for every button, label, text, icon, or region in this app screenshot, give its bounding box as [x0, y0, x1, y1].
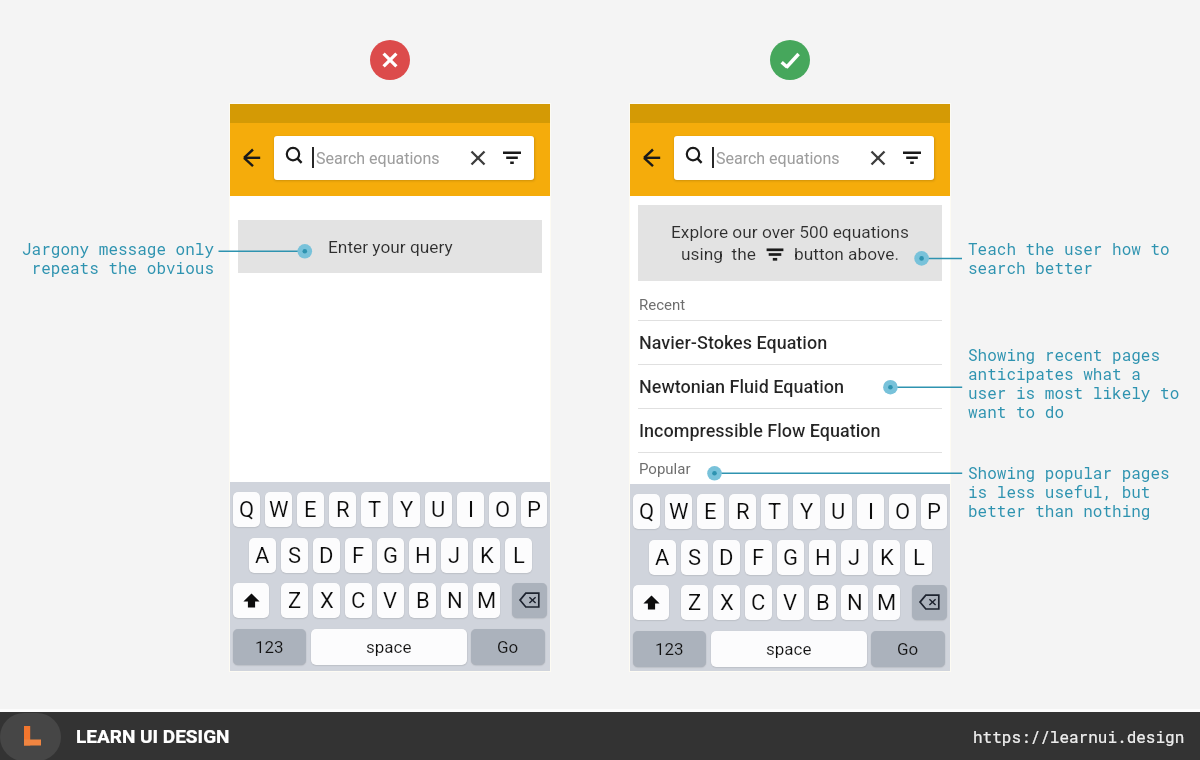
staticText: N — [447, 588, 463, 614]
button[interactable]: O — [489, 492, 516, 527]
button[interactable]: W — [665, 494, 692, 529]
button[interactable]: Shift — [633, 585, 669, 620]
button[interactable]: N — [441, 583, 468, 618]
staticText: S — [688, 545, 702, 571]
button[interactable]: 123 — [633, 631, 706, 667]
button[interactable]: Y — [793, 494, 820, 529]
button[interactable]: E — [297, 492, 324, 527]
button[interactable]: Y — [393, 492, 420, 527]
button[interactable]: A — [649, 540, 676, 575]
button[interactable]: I — [457, 492, 484, 527]
button[interactable]: M — [873, 585, 900, 620]
button[interactable]: S — [681, 540, 708, 575]
staticText: I — [868, 499, 874, 525]
button[interactable]: J — [441, 538, 468, 573]
staticText: Search equations — [716, 149, 840, 168]
staticText: Q — [639, 499, 655, 525]
staticText: Showing popular pages is less useful, bu… — [968, 462, 1200, 522]
button[interactable]: Incompressible Flow Equation — [639, 409, 950, 452]
button[interactable]: 123 — [233, 629, 306, 665]
button[interactable]: Recent — [639, 289, 950, 320]
button[interactable]: Explore our over 500 equations — [638, 205, 942, 281]
button[interactable]: L — [905, 540, 932, 575]
button[interactable]: T — [361, 492, 388, 527]
button[interactable]: J — [841, 540, 868, 575]
button[interactable]: Backspace — [912, 585, 947, 620]
button[interactable]: Search equations — [674, 136, 934, 180]
button[interactable]: N — [841, 585, 868, 620]
button[interactable]: X — [313, 583, 340, 618]
button[interactable]: V — [777, 585, 804, 620]
button[interactable]: Shift — [233, 583, 269, 618]
button[interactable]: H — [809, 540, 836, 575]
button[interactable]: Backspace — [512, 583, 547, 618]
staticText: X — [320, 588, 334, 614]
button[interactable]: M — [473, 583, 500, 618]
button[interactable]: D — [313, 538, 340, 573]
staticText: H — [415, 543, 431, 569]
button[interactable]: C — [345, 583, 372, 618]
button[interactable]: B — [809, 585, 836, 620]
button[interactable]: Q — [633, 494, 660, 529]
button[interactable]: G — [377, 538, 404, 573]
button[interactable]: P — [921, 494, 947, 529]
button[interactable]: Back — [634, 142, 670, 170]
button[interactable]: F — [345, 538, 372, 573]
staticText: I — [468, 497, 474, 523]
button[interactable]: Good example — [770, 40, 810, 80]
staticText: K — [480, 543, 494, 569]
button[interactable]: P — [521, 492, 547, 527]
button[interactable]: B — [409, 583, 436, 618]
button[interactable]: K — [873, 540, 900, 575]
button[interactable]: V — [377, 583, 404, 618]
button[interactable]: Go — [871, 631, 945, 667]
button[interactable]: E — [697, 494, 724, 529]
button[interactable]: Logo — [0, 713, 61, 760]
staticText: B — [816, 590, 830, 616]
button[interactable]: Newtonian Fluid Equation — [639, 365, 950, 408]
button[interactable]: K — [473, 538, 500, 573]
button[interactable]: W — [265, 492, 292, 527]
button[interactable]: C — [745, 585, 772, 620]
button[interactable]: R — [729, 494, 756, 529]
button[interactable]: U — [825, 494, 852, 529]
staticText: P — [527, 497, 541, 523]
button[interactable]: space — [711, 631, 867, 667]
button[interactable]: F — [745, 540, 772, 575]
button[interactable]: T — [761, 494, 788, 529]
button[interactable]: Q — [233, 492, 260, 527]
button[interactable]: Clear search — [464, 136, 492, 180]
button[interactable]: D — [713, 540, 740, 575]
button[interactable]: Go — [471, 629, 545, 665]
staticText: U — [831, 499, 846, 525]
button[interactable]: Filter — [498, 136, 526, 180]
staticText: using the — [681, 244, 756, 264]
button[interactable]: R — [329, 492, 356, 527]
button[interactable]: I — [857, 494, 884, 529]
staticText: Z — [688, 590, 702, 616]
button[interactable]: Back — [234, 142, 270, 170]
button[interactable]: H — [409, 538, 436, 573]
button[interactable]: Search equations — [274, 136, 534, 180]
staticText: J — [448, 543, 461, 569]
button[interactable]: Clear search — [864, 136, 892, 180]
button[interactable]: Z — [681, 585, 708, 620]
button[interactable]: L — [505, 538, 532, 573]
button[interactable]: O — [889, 494, 916, 529]
button[interactable]: X — [713, 585, 740, 620]
button[interactable]: G — [777, 540, 804, 575]
button[interactable]: Popular — [639, 453, 950, 484]
button[interactable]: Bad example — [370, 40, 410, 80]
button[interactable]: Z — [281, 583, 308, 618]
staticText: Teach the user how to search better — [968, 238, 1200, 279]
staticText: https://learnui.design — [973, 726, 1185, 747]
button[interactable]: Enter your query — [238, 220, 542, 273]
button[interactable]: Filter — [898, 136, 926, 180]
button[interactable]: Navier-Stokes Equation — [639, 321, 950, 364]
button[interactable]: U — [425, 492, 452, 527]
staticText: C — [351, 588, 366, 614]
button[interactable]: space — [311, 629, 467, 665]
staticText: Showing recent pages anticipates what a … — [968, 344, 1200, 423]
button[interactable]: A — [249, 538, 276, 573]
button[interactable]: S — [281, 538, 308, 573]
